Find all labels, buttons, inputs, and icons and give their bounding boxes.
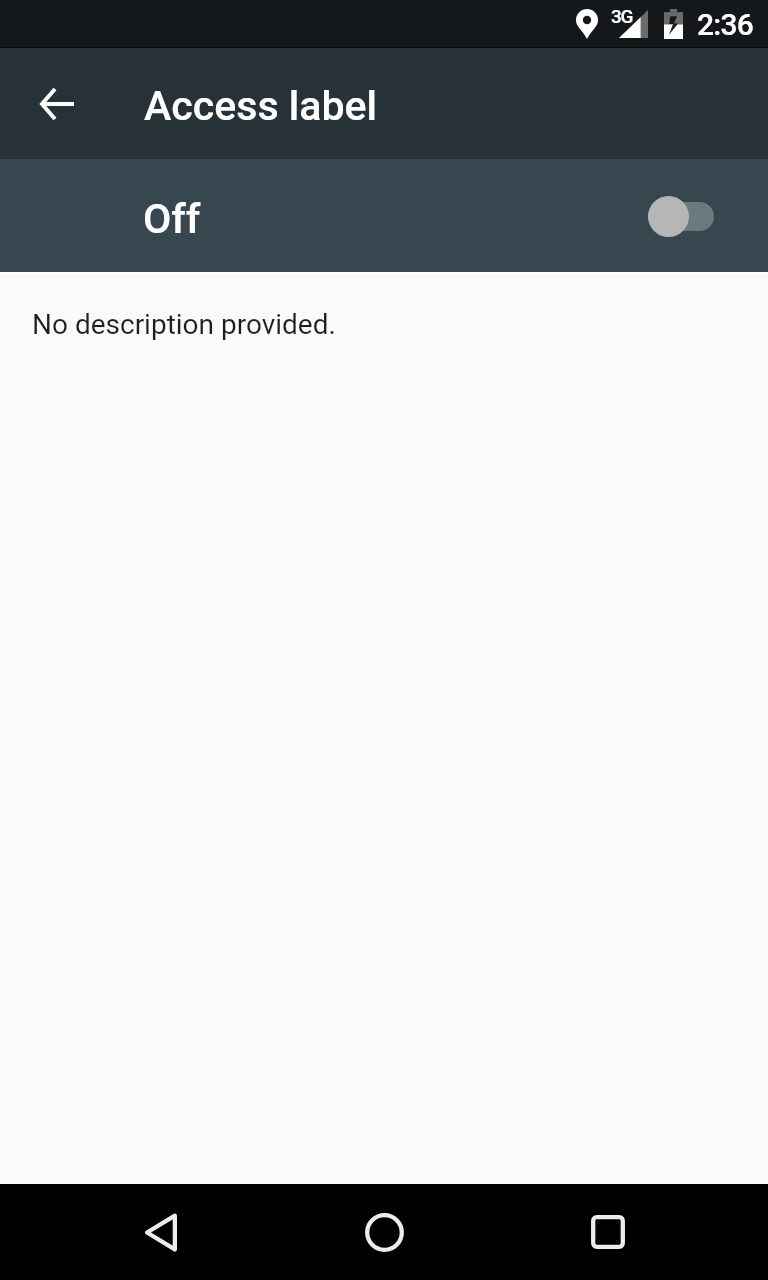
button[interactable]: Recent apps [496,1184,720,1280]
button[interactable]: Home [272,1184,496,1280]
staticText: 3G [611,5,633,27]
button[interactable]: Back [48,1184,272,1280]
staticText: 2:36 [697,7,753,42]
staticText: Off [143,195,201,243]
button[interactable]: Navigate up [20,67,94,141]
staticText: No description provided. [32,308,336,341]
staticText: Access label [144,82,378,130]
button[interactable]: Off [0,159,768,272]
